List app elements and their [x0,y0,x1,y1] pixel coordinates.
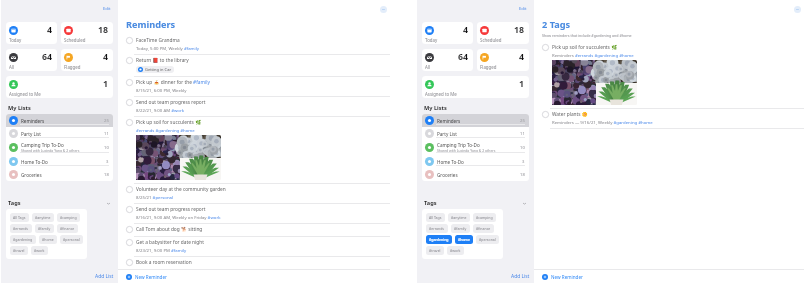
button[interactable]: Volunteer day at the community garden [118,184,390,204]
button[interactable]: #travel [10,246,28,255]
button[interactable]: Send out team progress report [118,204,390,224]
button[interactable]: #finance [473,224,494,233]
staticText: #personal [479,237,496,242]
staticText: Today [425,37,438,43]
button[interactable]: Water plants 🌼 [534,109,804,129]
button[interactable]: 4 [422,22,473,44]
staticText: Scheduled [64,37,86,43]
button[interactable]: Home To-Do [422,155,529,168]
button[interactable]: Book a room reservation [118,257,390,269]
button[interactable]: Reminders [6,114,113,127]
staticText: Reminders [437,118,461,124]
staticText: #home [42,237,54,242]
button[interactable]: Groceries [6,168,113,181]
button[interactable]: Party List [6,127,113,140]
button[interactable]: #camping [57,213,80,222]
button[interactable]: New Reminder [534,270,804,283]
button[interactable]: #anytime [448,213,470,222]
button[interactable]: #gardening [10,235,36,244]
button[interactable]: Groceries [422,168,529,181]
staticText: Today [9,37,22,43]
button[interactable]: #personal [476,235,499,244]
button[interactable]: 4 [6,22,57,44]
button[interactable]: 64 [422,49,473,71]
button[interactable]: 18 [477,22,529,44]
staticText: 8/15/21, 6:00 PM, Weekly [136,87,187,93]
button[interactable]: All Tags [426,213,445,222]
staticText: My Lists [8,104,31,112]
staticText: #gardening [13,237,33,242]
staticText: 18 [514,24,525,36]
staticText: Pick up soil for succulents 🌿 [552,44,618,51]
button[interactable]: #camping [473,213,496,222]
button[interactable]: Add List [95,273,114,280]
button[interactable]: New Reminder [118,270,390,283]
button[interactable]: More options [380,6,387,13]
button[interactable]: #family [35,224,54,233]
staticText: #anytime [35,215,51,220]
button[interactable]: 1 [6,76,113,98]
staticText: Show reminders that include #gardening a… [542,33,632,38]
staticText: 64 [458,51,469,63]
button[interactable]: #personal [60,235,83,244]
button[interactable]: 1 [422,76,529,98]
staticText: Camping Trip To-Do [21,142,64,148]
button[interactable]: Camping Trip To-Do [6,140,113,155]
staticText: Pick up 🍝 dinner for the #family [136,79,210,86]
button[interactable]: Call Tom about dog 🐕 sitting [118,224,390,237]
button[interactable]: #errands [10,224,32,233]
button[interactable]: Collapse tags [522,201,527,206]
staticText: #finance [60,226,75,231]
button[interactable]: Return 📕 to the library [118,55,390,77]
button[interactable]: Pick up 🍝 dinner for the #family [118,77,390,97]
button[interactable]: #work [447,246,464,255]
button[interactable]: Pick up soil for succulents 🌿 [118,117,390,184]
staticText: Edit [519,6,527,12]
staticText: 4 [463,24,469,36]
button[interactable]: #home [455,235,473,244]
button[interactable]: Reminders [422,114,529,127]
button[interactable]: Edit [103,6,111,12]
button[interactable]: 4 [477,49,529,71]
button[interactable]: #home [39,235,57,244]
staticText: 8/23/21, 9:00 PM #family [136,247,187,253]
button[interactable]: #anytime [32,213,54,222]
staticText: All [425,64,431,70]
staticText: #errands [13,226,29,231]
button[interactable]: Add List [511,273,530,280]
button[interactable]: #gardening [426,235,452,244]
button[interactable]: #errands [426,224,448,233]
staticText: New Reminder [551,274,583,280]
button[interactable]: All Tags [10,213,29,222]
button[interactable]: Party List [422,127,529,140]
button[interactable]: Home To-Do [6,155,113,168]
button[interactable]: 18 [61,22,113,44]
button[interactable]: #work [31,246,48,255]
staticText: Send out team progress report [136,206,206,213]
button[interactable]: More options [794,6,801,13]
button[interactable]: #finance [57,224,78,233]
staticText: #travel [13,248,25,253]
button[interactable]: Camping Trip To-Do [422,140,529,155]
staticText: #personal [63,237,80,242]
button[interactable]: Pick up soil for succulents 🌿 [534,42,804,109]
button[interactable]: #travel [426,246,444,255]
staticText: #finance [476,226,491,231]
staticText: 4 [103,51,109,63]
button[interactable]: #family [451,224,470,233]
button[interactable]: Collapse tags [106,201,111,206]
staticText: 4 [519,51,525,63]
staticText: #gardening [429,237,449,242]
staticText: #camping [60,215,77,220]
button[interactable]: Get a babysitter for date night [118,237,390,257]
staticText: 18 [520,172,525,178]
button[interactable]: Send out team progress report [118,97,390,117]
staticText: Tags [8,199,21,207]
staticText: #travel [429,248,441,253]
staticText: Reminders #errands #gardening #home [552,52,634,58]
button[interactable]: 64 [6,49,57,71]
button[interactable]: 4 [61,49,113,71]
button[interactable]: FaceTime Grandma [118,35,390,55]
staticText: 4 [47,24,53,36]
button[interactable]: Edit [519,6,527,12]
